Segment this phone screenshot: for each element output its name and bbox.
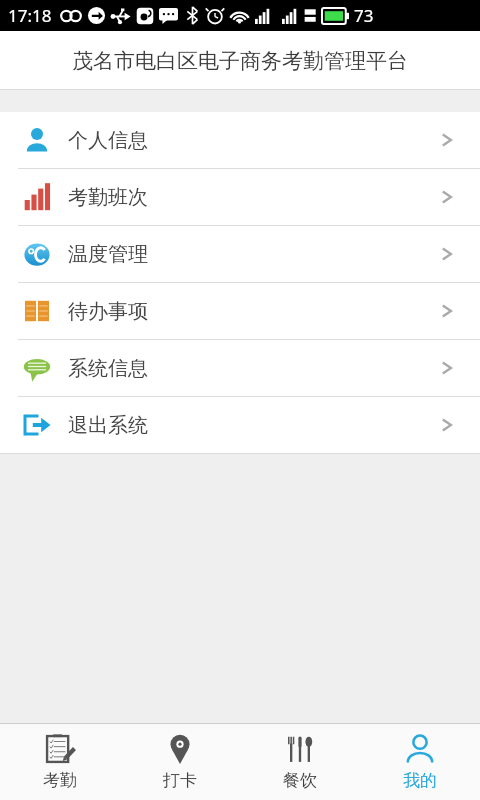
staticText: 我的: [403, 770, 437, 791]
staticText: 打卡: [163, 770, 197, 791]
staticText: 退出系统: [68, 413, 148, 438]
button[interactable]: 我的: [360, 724, 480, 800]
staticText: 待办事项: [68, 299, 148, 324]
button[interactable]: 打卡: [120, 724, 240, 800]
button[interactable]: 待办事项: [0, 283, 480, 339]
staticText: 系统信息: [68, 356, 148, 381]
staticText: 个人信息: [68, 128, 148, 153]
button[interactable]: 考勤: [0, 724, 120, 800]
staticText: 考勤班次: [68, 185, 148, 210]
button[interactable]: 餐饮: [240, 724, 360, 800]
staticText: 茂名市电白区电子商务考勤管理平台: [72, 48, 408, 74]
staticText: 17:18: [8, 4, 52, 27]
button[interactable]: 个人信息: [0, 112, 480, 168]
button[interactable]: 系统信息: [0, 340, 480, 396]
button[interactable]: 退出系统: [0, 397, 480, 453]
staticText: 餐饮: [283, 770, 317, 791]
button[interactable]: 温度管理: [0, 226, 480, 282]
staticText: 温度管理: [68, 242, 148, 267]
staticText: 考勤: [43, 770, 77, 791]
button[interactable]: 考勤班次: [0, 169, 480, 225]
staticText: 73: [354, 4, 374, 27]
